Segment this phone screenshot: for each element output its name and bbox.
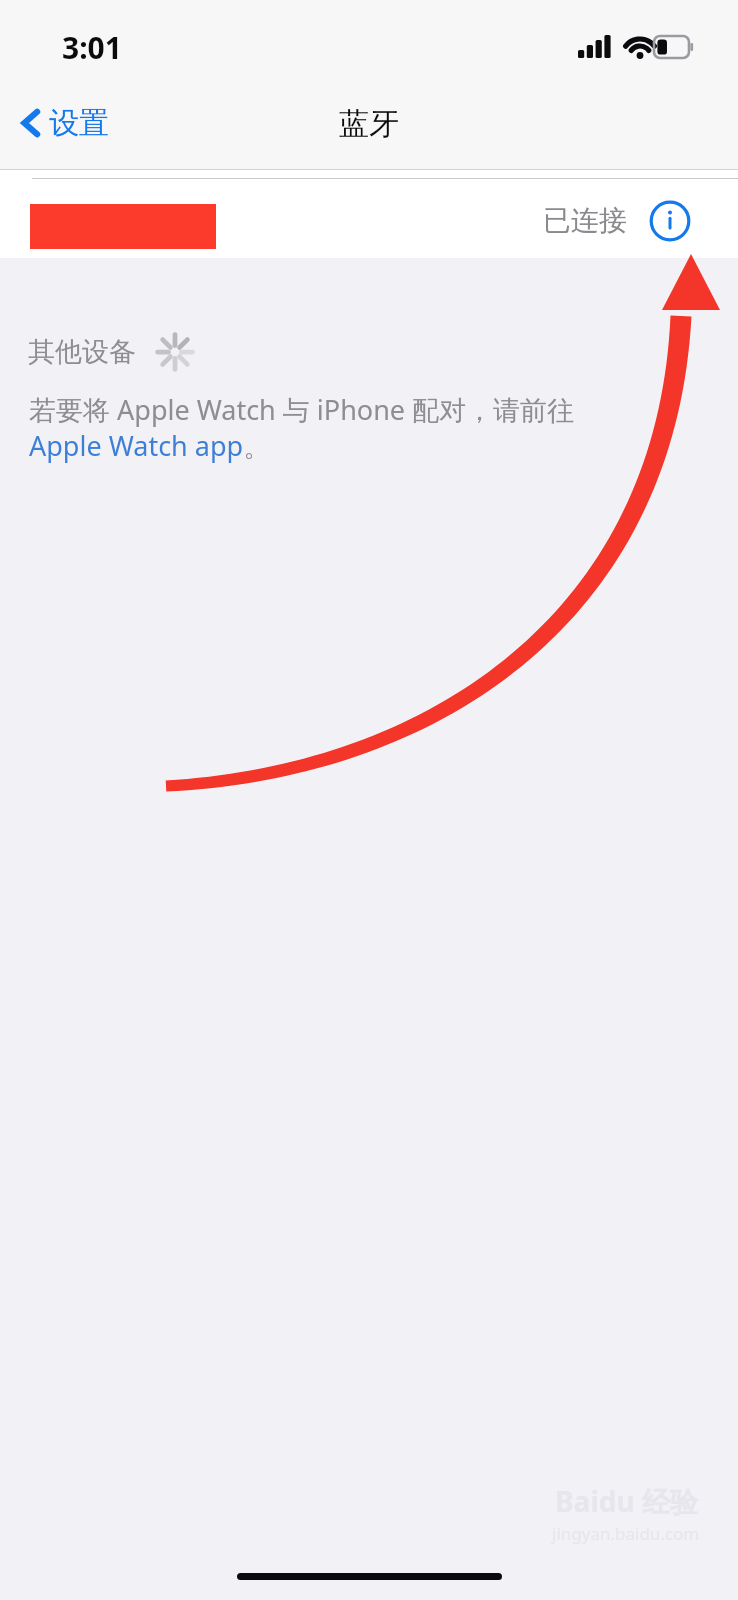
button[interactable]: 设置 bbox=[14, 100, 115, 146]
staticText: Baidu 经验 bbox=[555, 1482, 698, 1520]
staticText: 若要将 Apple Watch 与 iPhone 配对，请前往 Apple Wa… bbox=[29, 391, 641, 464]
staticText: 蓝牙 bbox=[339, 105, 399, 143]
button[interactable]: 设备详细信息 bbox=[648, 199, 692, 243]
button[interactable]: 已连接 bbox=[0, 170, 738, 258]
staticText: 设置 bbox=[49, 104, 109, 142]
staticText: 已连接 bbox=[543, 203, 627, 238]
staticText: 3:01 bbox=[62, 27, 122, 68]
staticText: 其他设备 bbox=[28, 335, 136, 369]
staticText: jingyan.baidu.com bbox=[552, 1522, 700, 1545]
